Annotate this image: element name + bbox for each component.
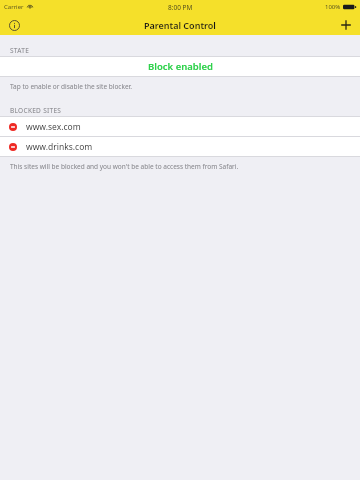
staticText: 8:00 PM bbox=[168, 3, 193, 12]
staticText: www.drinks.com bbox=[26, 141, 93, 153]
staticText: Block enabled bbox=[148, 60, 213, 73]
staticText: Carrier bbox=[4, 3, 24, 11]
button[interactable]: Info bbox=[5, 16, 23, 34]
button[interactable]: Add site bbox=[337, 16, 355, 34]
button[interactable]: Remove www.drinks.com bbox=[5, 139, 21, 155]
staticText: This sites will be blocked and you won't… bbox=[10, 162, 239, 171]
staticText: Parental Control bbox=[144, 19, 216, 31]
staticText: BLOCKED SITES bbox=[10, 106, 62, 115]
button[interactable]: Block enabled bbox=[0, 57, 360, 76]
staticText: STATE bbox=[10, 46, 30, 55]
staticText: Tap to enable or disable the site blocke… bbox=[10, 82, 132, 91]
button[interactable]: Remove www.sex.com bbox=[0, 117, 360, 136]
staticText: 100% bbox=[325, 3, 341, 11]
button[interactable]: Remove www.drinks.com bbox=[0, 137, 360, 156]
staticText: www.sex.com bbox=[26, 121, 81, 133]
button[interactable]: Remove www.sex.com bbox=[5, 119, 21, 135]
